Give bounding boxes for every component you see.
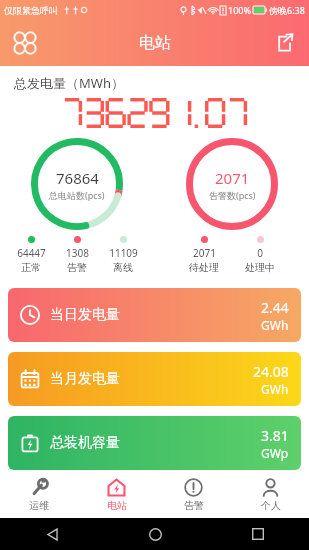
staticText: 当月发电量 (50, 370, 120, 388)
staticText: 2071 (193, 246, 216, 260)
button[interactable]: 电站 (78, 472, 155, 518)
staticText: 总发电量（MWh） (14, 74, 124, 92)
staticText: 总电站数(pcs) (49, 189, 105, 201)
staticText: GWh (261, 317, 289, 333)
button[interactable]: Recents (243, 519, 273, 549)
staticText: 告警 (184, 499, 204, 512)
button[interactable]: Menu (10, 28, 40, 58)
button[interactable]: 告警 (155, 472, 232, 518)
staticText: 电站 (139, 33, 171, 53)
staticText: 2071 (215, 168, 250, 188)
staticText: 傍晚6:38 (269, 4, 305, 16)
button[interactable]: Home (140, 519, 170, 549)
staticText: 100% (228, 4, 251, 16)
staticText: 告警数(pcs) (209, 189, 256, 201)
staticText: 2.44 (261, 298, 289, 317)
staticText: 24.08 (253, 362, 289, 381)
staticText: 76864 (56, 168, 99, 188)
staticText: 仅限紧急呼叫 (4, 5, 58, 16)
staticText: 当日发电量 (50, 306, 120, 324)
staticText: 64447 (17, 246, 46, 260)
staticText: 0 (257, 246, 263, 260)
staticText: 3.81 (261, 426, 289, 445)
staticText: GWp (261, 445, 289, 461)
button[interactable]: Share (269, 28, 299, 58)
staticText: 离线 (113, 261, 133, 274)
staticText: 个人 (261, 499, 281, 512)
staticText: 1308 (66, 246, 89, 260)
staticText: 11109 (109, 246, 138, 260)
staticText: GWh (261, 381, 289, 397)
staticText: 待处理 (189, 261, 219, 274)
staticText: 正常 (21, 261, 41, 274)
button[interactable]: 总装机容量 (8, 416, 301, 470)
staticText: 处理中 (245, 261, 275, 274)
button[interactable]: 当月发电量 (8, 352, 301, 406)
staticText: 电站 (107, 499, 127, 512)
staticText: 运维 (29, 499, 49, 512)
button[interactable]: 运维 (0, 472, 78, 518)
staticText: 告警 (67, 261, 87, 274)
button[interactable]: 当日发电量 (8, 288, 301, 342)
button[interactable]: Back (37, 519, 67, 549)
staticText: 总装机容量 (50, 434, 120, 452)
button[interactable]: 个人 (232, 472, 309, 518)
